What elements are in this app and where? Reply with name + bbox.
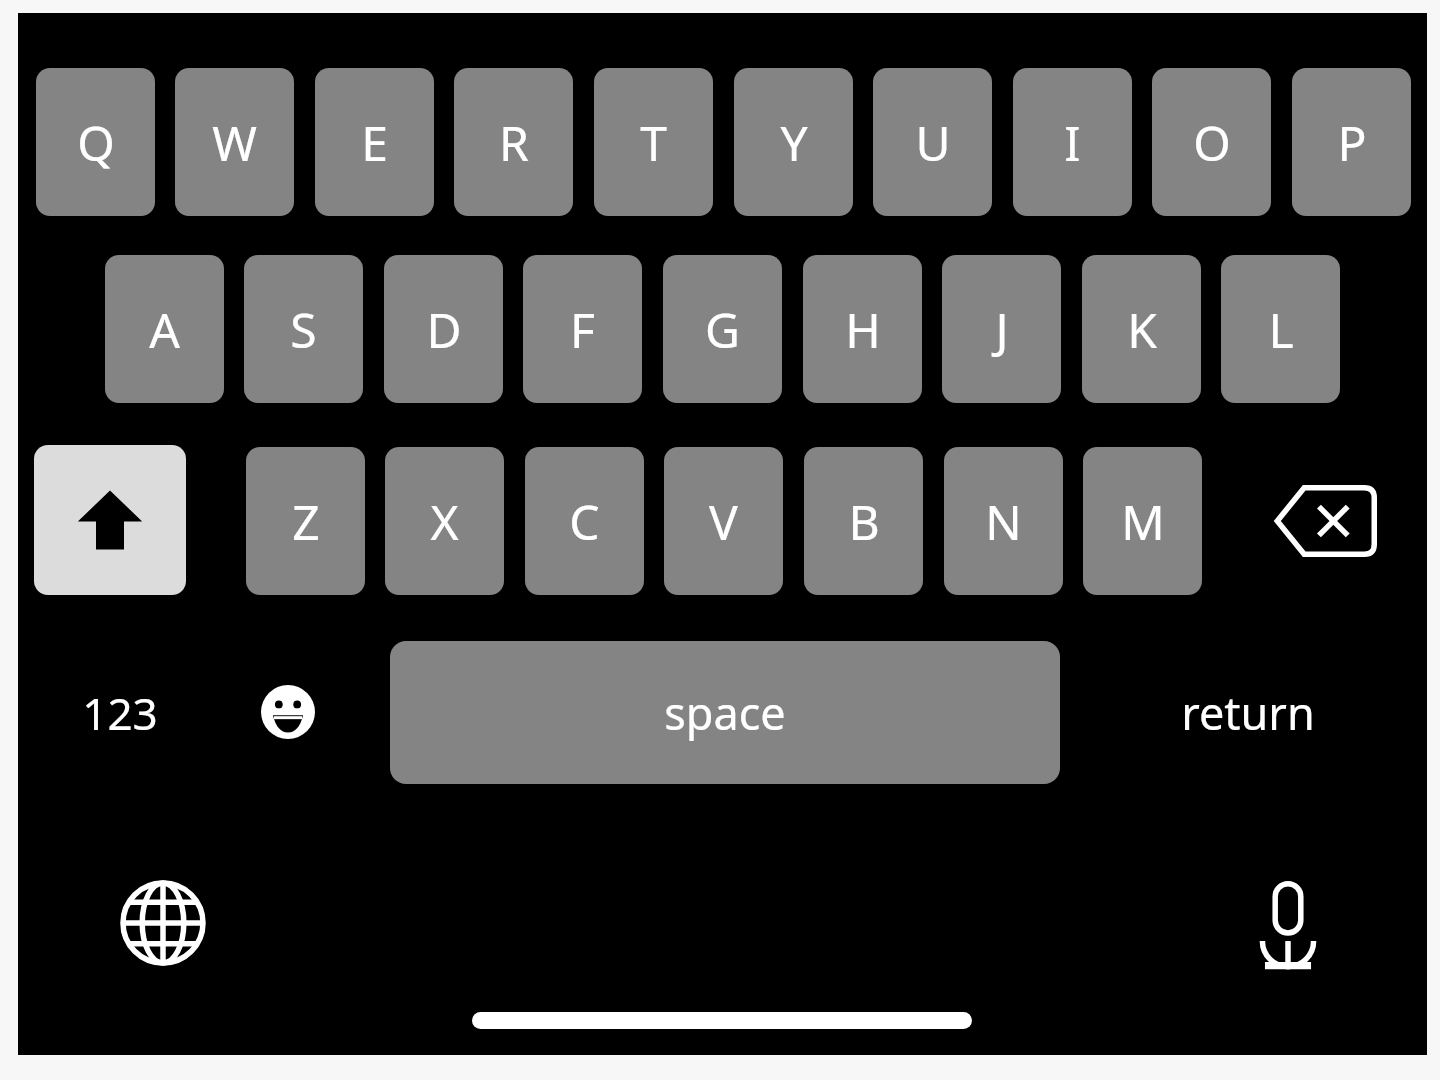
button[interactable]: Z xyxy=(246,447,365,595)
staticText: M xyxy=(1121,489,1165,554)
staticText: Q xyxy=(77,110,115,175)
staticText: O xyxy=(1193,110,1231,175)
staticText: U xyxy=(915,110,951,175)
button[interactable]: F xyxy=(523,255,642,403)
staticText: Z xyxy=(292,489,320,554)
button[interactable]: P xyxy=(1292,68,1411,216)
button[interactable]: H xyxy=(803,255,922,403)
staticText: J xyxy=(995,297,1009,362)
button[interactable]: return xyxy=(1150,655,1345,770)
staticText: X xyxy=(430,489,459,554)
staticText: R xyxy=(499,110,529,175)
staticText: A xyxy=(149,297,180,362)
staticText: I xyxy=(1064,110,1081,175)
button[interactable]: L xyxy=(1221,255,1340,403)
staticText: D xyxy=(426,297,462,362)
staticText: N xyxy=(985,489,1022,554)
staticText: W xyxy=(212,110,257,175)
staticText: P xyxy=(1337,110,1367,175)
button[interactable]: J xyxy=(942,255,1061,403)
button[interactable]: O xyxy=(1152,68,1271,216)
button[interactable]: U xyxy=(873,68,992,216)
staticText: T xyxy=(640,110,667,175)
staticText: Y xyxy=(780,110,808,175)
button[interactable]: Y xyxy=(734,68,853,216)
button[interactable]: E xyxy=(315,68,434,216)
staticText: E xyxy=(361,110,388,175)
button[interactable]: C xyxy=(525,447,644,595)
staticText: H xyxy=(845,297,881,362)
button[interactable]: Emoji xyxy=(236,660,340,764)
button[interactable]: Change keyboard language xyxy=(108,868,218,978)
button[interactable]: X xyxy=(385,447,504,595)
button[interactable]: D xyxy=(384,255,503,403)
button[interactable]: space xyxy=(390,641,1060,784)
staticText: return xyxy=(1181,682,1315,743)
button[interactable]: Q xyxy=(36,68,155,216)
button[interactable]: V xyxy=(664,447,783,595)
staticText: space xyxy=(664,682,786,743)
button[interactable]: N xyxy=(944,447,1063,595)
button[interactable]: G xyxy=(663,255,782,403)
staticText: C xyxy=(569,489,600,554)
staticText: L xyxy=(1268,297,1294,362)
staticText: V xyxy=(709,489,738,554)
staticText: B xyxy=(848,489,880,554)
staticText: F xyxy=(570,297,595,362)
button[interactable]: M xyxy=(1083,447,1202,595)
button[interactable]: S xyxy=(244,255,363,403)
button[interactable]: K xyxy=(1082,255,1201,403)
staticText: S xyxy=(290,297,317,362)
staticText: G xyxy=(705,297,740,362)
button[interactable]: Dictate xyxy=(1233,868,1343,983)
button[interactable]: I xyxy=(1013,68,1132,216)
button[interactable]: 123 xyxy=(40,655,200,770)
button[interactable]: Shift xyxy=(34,445,186,595)
button[interactable]: R xyxy=(454,68,573,216)
button[interactable]: B xyxy=(804,447,923,595)
button[interactable]: A xyxy=(105,255,224,403)
button[interactable]: T xyxy=(594,68,713,216)
staticText: 123 xyxy=(82,683,158,743)
button[interactable]: Backspace xyxy=(1240,447,1410,595)
button[interactable]: W xyxy=(175,68,294,216)
staticText: K xyxy=(1127,297,1157,362)
